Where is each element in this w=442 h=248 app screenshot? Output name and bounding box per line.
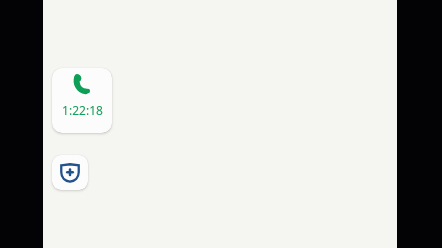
button[interactable]: Safety shield xyxy=(52,155,88,190)
button[interactable]: Ongoing call, 1:22:18 xyxy=(52,68,112,133)
staticText: 1:22:18 xyxy=(62,102,103,118)
